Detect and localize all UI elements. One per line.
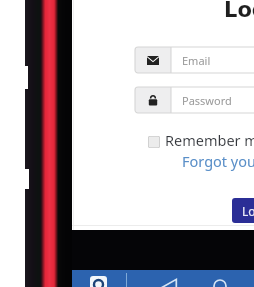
staticText: Email (182, 53, 211, 68)
staticText: Login (242, 203, 254, 219)
staticText: Remember me (165, 130, 254, 150)
button[interactable]: Login (232, 198, 254, 223)
button[interactable]: Back (160, 279, 177, 287)
button[interactable]: Forgot your password? (182, 151, 254, 171)
button[interactable]: Remember me (148, 132, 254, 152)
staticText: Login (224, 0, 254, 22)
button[interactable]: Camera (90, 276, 107, 287)
button[interactable]: Home (213, 279, 227, 287)
staticText: Password (182, 93, 232, 108)
